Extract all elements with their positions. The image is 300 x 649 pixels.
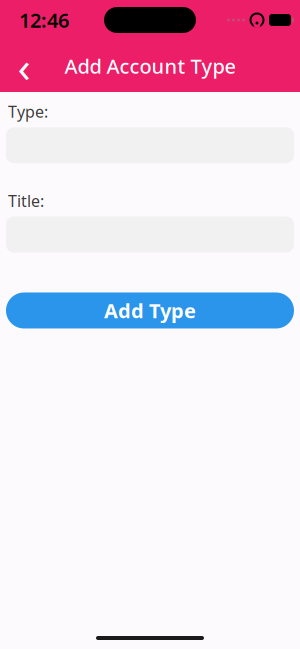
button[interactable]: Back <box>6 48 42 84</box>
staticText: Add Type <box>104 297 196 324</box>
button[interactable]: Add Type <box>6 292 294 328</box>
staticText: ‹ <box>17 38 30 94</box>
staticText: Type: <box>8 101 48 122</box>
staticText: Title: <box>8 190 44 211</box>
staticText: Add Account Type <box>64 53 235 79</box>
staticText: 12:46 <box>19 7 69 33</box>
